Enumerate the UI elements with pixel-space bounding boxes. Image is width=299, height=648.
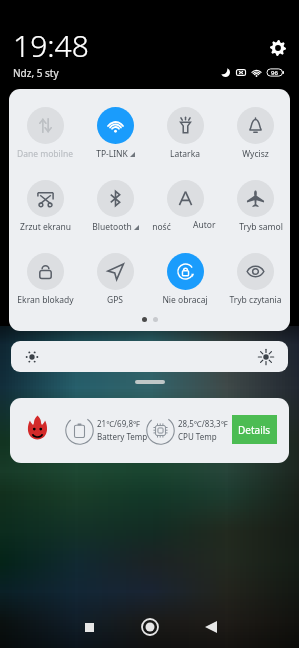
button[interactable]: Tryb czytania bbox=[220, 253, 290, 313]
button[interactable]: Back bbox=[196, 612, 226, 642]
staticText: Wycisz bbox=[242, 148, 269, 160]
staticText: Bluetooth bbox=[92, 221, 132, 233]
button[interactable]: Wycisz bbox=[220, 107, 290, 167]
button[interactable]: Settings bbox=[270, 40, 286, 56]
button[interactable]: Details bbox=[232, 415, 277, 444]
staticText: Ndz, 5 sty bbox=[13, 66, 59, 80]
button[interactable]: Home bbox=[135, 612, 165, 642]
staticText: Tryb samol bbox=[239, 221, 283, 233]
staticText: Zrzut ekranu bbox=[20, 221, 71, 233]
button[interactable]: Bluetooth bbox=[80, 180, 150, 240]
staticText: 96 bbox=[271, 69, 278, 77]
button[interactable]: Recents bbox=[74, 612, 104, 642]
staticText: Latarka bbox=[170, 148, 200, 160]
staticText: 28,5℃/83,3℉ bbox=[178, 418, 228, 429]
staticText: 19:48 bbox=[13, 25, 89, 66]
button[interactable]: Tryb samol bbox=[220, 180, 290, 240]
staticText: Nie obracaj bbox=[162, 294, 208, 306]
staticText: CPU Temp bbox=[178, 431, 217, 442]
button[interactable]: GPS bbox=[80, 253, 150, 313]
button[interactable]: TP-LINK bbox=[80, 107, 150, 167]
staticText: Ekran blokady bbox=[17, 294, 74, 306]
staticText: GPS bbox=[107, 294, 123, 306]
staticText: Battery Temp bbox=[97, 431, 148, 442]
staticText: Autor bbox=[193, 219, 216, 231]
button[interactable]: Dane mobilne bbox=[10, 107, 80, 167]
staticText: Dane mobilne bbox=[17, 148, 73, 160]
button[interactable]: Ekran blokady bbox=[10, 253, 80, 313]
staticText: Tryb czytania bbox=[229, 294, 282, 306]
staticText: Details bbox=[238, 423, 271, 437]
button[interactable]: Latarka bbox=[150, 107, 220, 167]
staticText: ność bbox=[152, 221, 171, 233]
button[interactable]: ność bbox=[150, 180, 220, 240]
button[interactable]: Zrzut ekranu bbox=[10, 180, 80, 240]
staticText: TP-LINK bbox=[96, 148, 128, 160]
button[interactable]: Nie obracaj bbox=[150, 253, 220, 313]
staticText: 21℃/69,8℉ bbox=[97, 418, 140, 429]
button[interactable]: Brightness bbox=[11, 341, 288, 372]
